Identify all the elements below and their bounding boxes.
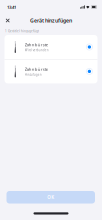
button[interactable]: Zahnbürste <box>4 35 97 59</box>
staticText: Zahnbürste <box>25 42 48 47</box>
staticText: Hinzufügen <box>25 73 42 77</box>
staticText: Wird verbunden <box>25 48 49 52</box>
staticText: 1 Gerät(e) hinzugefügt <box>5 29 39 33</box>
button[interactable]: Schließen <box>2 15 13 26</box>
button[interactable]: OK <box>6 191 95 203</box>
staticText: Zahnbürste <box>25 66 48 72</box>
button[interactable]: Zahnbürste <box>4 59 97 83</box>
staticText: Gerät hinzufügen <box>30 17 72 24</box>
staticText: 13:41 <box>7 4 16 10</box>
staticText: OK <box>47 194 54 200</box>
